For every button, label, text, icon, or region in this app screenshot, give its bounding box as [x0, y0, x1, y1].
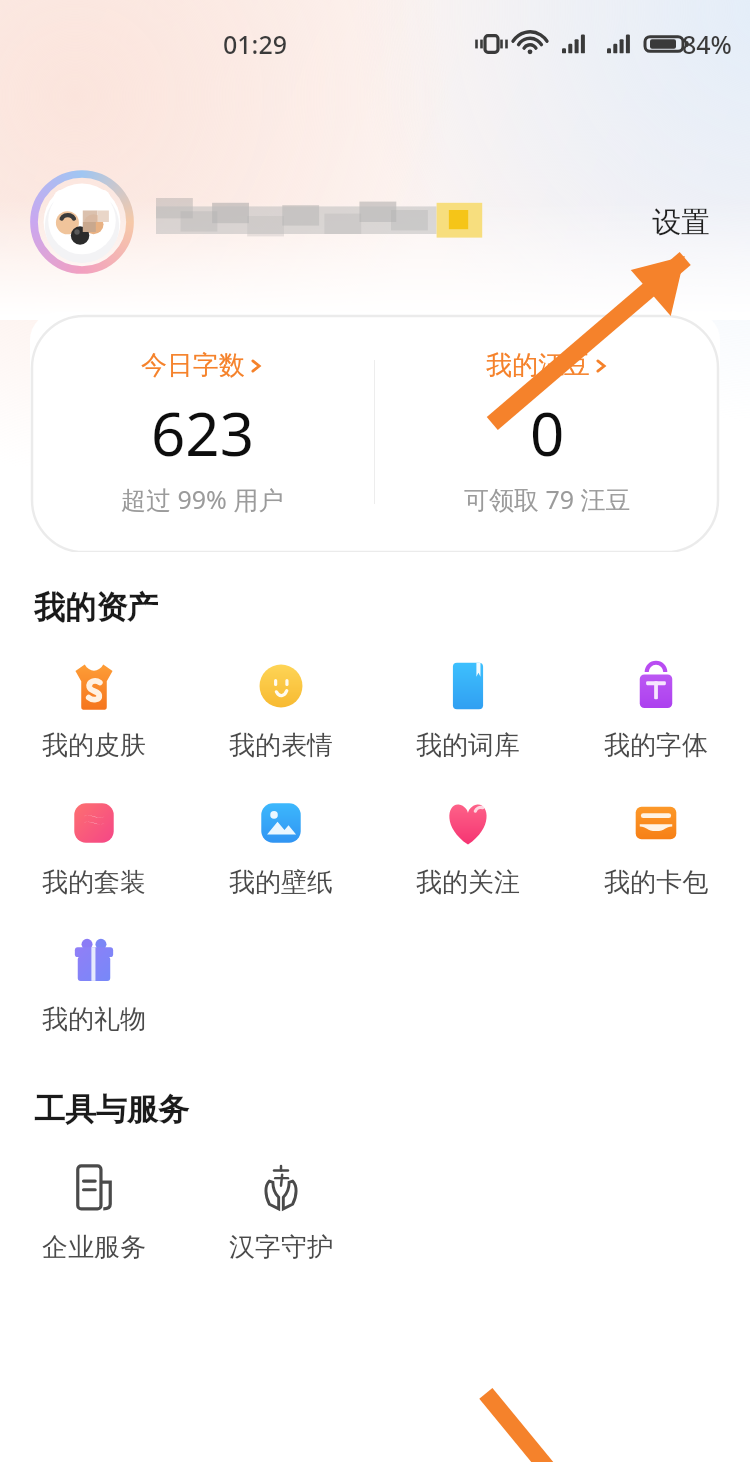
- staticText: 我的关注: [416, 866, 520, 899]
- staticText: 设置: [652, 204, 710, 241]
- button[interactable]: 我的礼物: [0, 923, 187, 1044]
- staticText: 我的汪豆: [486, 349, 590, 382]
- staticText: 企业服务: [42, 1231, 146, 1264]
- staticText: 我的字体: [604, 729, 708, 762]
- staticText: 工具与服务: [34, 1090, 189, 1129]
- staticText: 我的套装: [42, 866, 146, 899]
- staticText: 我的礼物: [42, 1003, 146, 1036]
- staticText: 我的壁纸: [229, 866, 333, 899]
- button[interactable]: 我的皮肤: [0, 649, 187, 770]
- staticText: 0: [530, 392, 565, 474]
- button[interactable]: 我的卡包: [562, 786, 750, 907]
- button[interactable]: 我的关注: [374, 786, 562, 907]
- staticText: 84%: [682, 27, 732, 61]
- staticText: 今日字数: [141, 349, 245, 382]
- button[interactable]: 企业服务: [0, 1151, 187, 1272]
- button[interactable]: 设置: [646, 198, 716, 247]
- staticText: 我的皮肤: [42, 729, 146, 762]
- staticText: 我的卡包: [604, 866, 708, 899]
- staticText: 623: [151, 392, 254, 474]
- button[interactable]: 今日字数: [30, 312, 374, 552]
- button[interactable]: 我的字体: [562, 649, 750, 770]
- staticText: 01:29: [223, 27, 288, 61]
- staticText: 汉字守护: [229, 1231, 333, 1264]
- button[interactable]: 我的词库: [374, 649, 562, 770]
- button[interactable]: 我的套装: [0, 786, 187, 907]
- staticText: 我的词库: [416, 729, 520, 762]
- button[interactable]: 我的壁纸: [187, 786, 374, 907]
- staticText: 可领取 79 汪豆: [464, 482, 631, 516]
- button[interactable]: 我的汪豆: [375, 312, 720, 552]
- button[interactable]: 头像: [34, 174, 130, 270]
- staticText: 我的资产: [34, 588, 158, 627]
- button[interactable]: 我的表情: [187, 649, 374, 770]
- button[interactable]: 汉字守护: [187, 1151, 374, 1272]
- staticText: 超过 99% 用户: [121, 482, 284, 516]
- staticText: 我的表情: [229, 729, 333, 762]
